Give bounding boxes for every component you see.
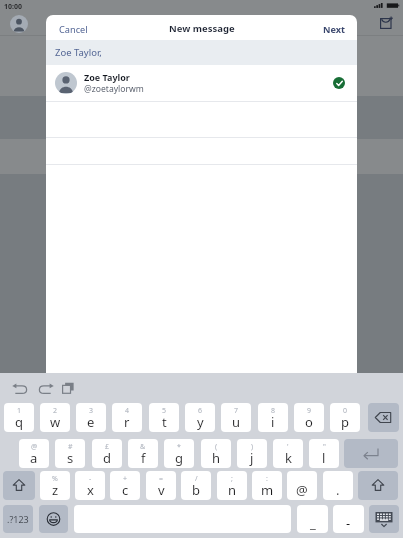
staticText: @ xyxy=(31,442,38,452)
button[interactable]: Undo xyxy=(11,382,29,395)
button[interactable]: # xyxy=(55,439,85,468)
staticText: + xyxy=(123,474,128,484)
staticText: 4 xyxy=(125,406,130,416)
staticText: = xyxy=(159,474,164,484)
staticText: x xyxy=(87,481,94,499)
button[interactable]: Zoe Taylor, xyxy=(46,40,357,65)
staticText: 9 xyxy=(307,406,312,416)
staticText: £ xyxy=(105,442,110,452)
staticText: ) xyxy=(251,442,254,452)
button[interactable]: " xyxy=(309,439,339,468)
staticText: h xyxy=(212,449,221,467)
button[interactable]: . xyxy=(323,471,353,500)
staticText: e xyxy=(87,413,95,431)
button[interactable]: 5 xyxy=(149,403,179,432)
staticText: Zoe Taylor, xyxy=(55,46,102,59)
staticText: Cancel xyxy=(59,23,88,36)
button[interactable]: Cancel xyxy=(46,15,101,40)
button[interactable]: @ xyxy=(19,439,49,468)
button[interactable]: Emoji xyxy=(39,505,68,533)
staticText: @zoetaylorwm xyxy=(84,83,144,95)
button[interactable]: Zoe Taylor xyxy=(46,65,357,101)
staticText: 0 xyxy=(343,406,348,416)
staticText: / xyxy=(195,474,198,484)
button[interactable]: 1 xyxy=(4,403,34,432)
staticText: k xyxy=(285,449,292,467)
staticText: * xyxy=(177,442,181,452)
button[interactable]: * xyxy=(164,439,194,468)
button[interactable]: 9 xyxy=(294,403,324,432)
button[interactable]: 6 xyxy=(185,403,215,432)
staticText: g xyxy=(175,449,183,467)
button[interactable]: Hide keyboard xyxy=(369,505,399,533)
staticText: " xyxy=(323,442,326,452)
staticText: t xyxy=(162,413,167,431)
button[interactable]: 4 xyxy=(112,403,142,432)
button[interactable]: : xyxy=(252,471,282,500)
staticText: 8 xyxy=(271,406,276,416)
button[interactable]: / xyxy=(181,471,211,500)
staticText: 6 xyxy=(198,406,203,416)
button[interactable]: & xyxy=(128,439,158,468)
staticText: ; xyxy=(231,474,233,484)
button[interactable]: + xyxy=(110,471,140,500)
staticText: .?123 xyxy=(7,513,29,525)
staticText: 1 xyxy=(17,406,22,416)
staticText: v xyxy=(158,481,165,499)
staticText: c xyxy=(122,481,129,499)
button[interactable]: £ xyxy=(92,439,122,468)
button[interactable]: _ xyxy=(297,505,328,533)
staticText: m xyxy=(261,481,274,499)
button[interactable]: = xyxy=(146,471,176,500)
staticText: j xyxy=(250,449,254,467)
staticText: - xyxy=(89,474,92,484)
staticText: a xyxy=(30,449,38,467)
button[interactable]: Backspace xyxy=(368,403,399,432)
staticText: _ xyxy=(310,514,316,532)
button[interactable]: - xyxy=(333,505,364,533)
staticText: & xyxy=(140,442,146,452)
staticText: 3 xyxy=(89,406,94,416)
staticText: n xyxy=(228,481,237,499)
button[interactable]: .?123 xyxy=(3,505,33,533)
button[interactable]: % xyxy=(40,471,70,500)
button[interactable]: Return xyxy=(344,439,398,468)
staticText: 2 xyxy=(53,406,58,416)
staticText: @ xyxy=(296,481,308,499)
button[interactable]: ' xyxy=(273,439,303,468)
staticText: l xyxy=(322,449,326,467)
button[interactable]: 2 xyxy=(40,403,70,432)
staticText: 10:00 xyxy=(4,2,22,12)
staticText: y xyxy=(197,413,204,431)
staticText: - xyxy=(346,514,351,532)
staticText: ' xyxy=(287,442,289,452)
button[interactable]: New message xyxy=(379,16,394,31)
button[interactable]: 0 xyxy=(330,403,360,432)
button[interactable]: Shift xyxy=(3,471,35,500)
button[interactable]: 7 xyxy=(221,403,251,432)
button[interactable]: Profile xyxy=(10,15,28,33)
staticText: o xyxy=(305,413,313,431)
staticText: Next xyxy=(323,23,346,36)
button[interactable]: - xyxy=(75,471,105,500)
staticText: % xyxy=(52,474,58,484)
staticText: s xyxy=(67,449,74,467)
staticText: r xyxy=(124,413,130,431)
button[interactable]: Next xyxy=(312,15,357,40)
staticText: # xyxy=(68,442,73,452)
button[interactable]: ( xyxy=(201,439,231,468)
button[interactable]: Redo xyxy=(37,382,55,395)
button[interactable]: @ xyxy=(287,471,317,500)
button[interactable]: 8 xyxy=(258,403,288,432)
button[interactable]: ; xyxy=(217,471,247,500)
staticText: : xyxy=(266,474,268,484)
staticText: . xyxy=(336,481,340,499)
staticText: q xyxy=(15,413,23,431)
staticText: u xyxy=(232,413,241,431)
button[interactable]: Shift xyxy=(358,471,398,500)
staticText: Zoe Taylor xyxy=(84,71,130,83)
button[interactable]: Duplicate xyxy=(62,382,74,394)
button[interactable]: ) xyxy=(237,439,267,468)
button[interactable]: 3 xyxy=(76,403,106,432)
